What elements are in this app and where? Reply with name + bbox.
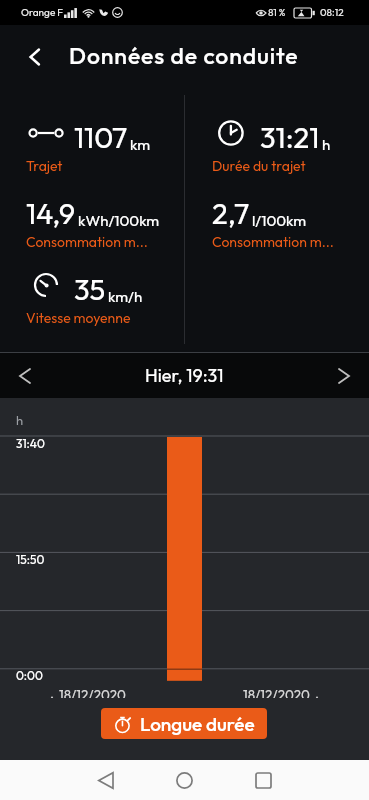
button[interactable]: Back (14, 36, 56, 78)
button[interactable]: Previous day (0, 353, 50, 398)
staticText: l/100km (252, 211, 307, 230)
staticText: Durée du trajet (212, 157, 306, 175)
staticText: 1107 (74, 119, 128, 156)
button[interactable]: Next day (319, 353, 369, 398)
staticText: 14,9 (26, 195, 76, 232)
staticText: Orange F (21, 6, 63, 19)
button[interactable]: Back (85, 760, 125, 800)
staticText: 2,7 (212, 195, 250, 232)
staticText: 0:00 (16, 668, 43, 683)
staticText: kWh/100km (78, 211, 160, 230)
staticText: km/h (108, 287, 143, 306)
button[interactable]: Recent apps (243, 760, 283, 800)
staticText: 31:40 (16, 436, 45, 451)
staticText: 08:12 (320, 6, 344, 19)
staticText: Hier, 19:31 (145, 364, 224, 387)
staticText: 35 (74, 271, 106, 308)
staticText: Longue durée (140, 712, 255, 736)
staticText: Trajet (26, 157, 63, 175)
staticText: 18/12/2020 (243, 686, 310, 703)
button[interactable]: Longue durée (101, 708, 267, 739)
staticText: 81 % (268, 6, 286, 19)
staticText: 31:21 (260, 119, 320, 156)
button[interactable]: Home (164, 760, 204, 800)
staticText: km (130, 135, 151, 154)
staticText: Données de conduite (69, 41, 299, 70)
staticText: 18/12/2020 (59, 686, 126, 703)
staticText: Consommation m... (212, 233, 334, 251)
staticText: h (322, 135, 331, 154)
staticText: h (16, 412, 24, 428)
staticText: Vitesse moyenne (26, 309, 131, 327)
staticText: Consommation m... (26, 233, 148, 251)
staticText: 15:50 (16, 552, 45, 567)
